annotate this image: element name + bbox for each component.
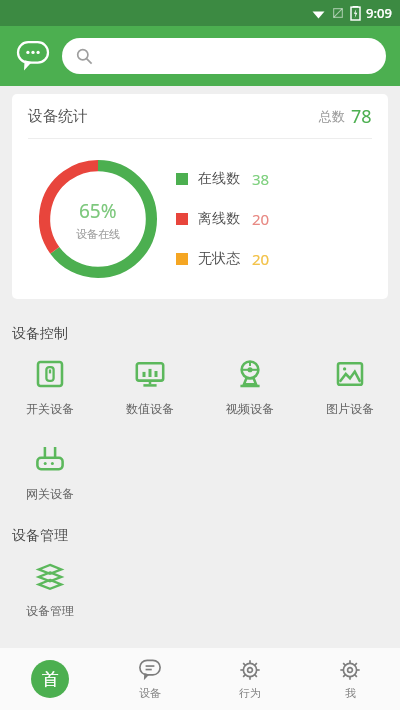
staticText: 开关设备 bbox=[26, 401, 74, 416]
staticText: 图片设备 bbox=[326, 401, 374, 416]
staticText: 20 bbox=[252, 249, 270, 269]
staticText: 行为 bbox=[239, 686, 261, 700]
staticText: 网关设备 bbox=[26, 486, 74, 501]
staticText: 9:09 bbox=[366, 4, 392, 22]
staticText: 设备控制 bbox=[12, 325, 68, 343]
staticText: 数值设备 bbox=[126, 401, 174, 416]
button[interactable]: 设备统计 bbox=[12, 94, 388, 299]
staticText: 65% bbox=[79, 198, 117, 224]
button[interactable]: 我 bbox=[300, 648, 400, 710]
staticText: 总数 bbox=[319, 108, 345, 124]
button[interactable]: 视频设备 bbox=[200, 353, 300, 420]
button[interactable]: 行为 bbox=[200, 648, 300, 710]
staticText: 离线数 bbox=[198, 210, 240, 228]
button[interactable] bbox=[62, 38, 386, 74]
staticText: 设备管理 bbox=[26, 603, 74, 618]
button[interactable]: 开关设备 bbox=[0, 353, 100, 420]
staticText: 设备在线 bbox=[76, 227, 120, 241]
staticText: 无状态 bbox=[198, 250, 240, 268]
staticText: 设备统计 bbox=[28, 107, 88, 126]
staticText: 视频设备 bbox=[226, 401, 274, 416]
staticText: 设备管理 bbox=[12, 527, 68, 545]
staticText: 我 bbox=[345, 686, 356, 700]
staticText: 20 bbox=[252, 209, 270, 229]
staticText: 38 bbox=[252, 169, 270, 189]
staticText: 设备 bbox=[139, 686, 161, 700]
button[interactable]: 图片设备 bbox=[300, 353, 400, 420]
button[interactable]: 数值设备 bbox=[100, 353, 200, 420]
button[interactable]: 网关设备 bbox=[0, 438, 100, 505]
staticText: 在线数 bbox=[198, 170, 240, 188]
button[interactable]: 首 bbox=[0, 648, 100, 710]
button[interactable]: 设备 bbox=[100, 648, 200, 710]
button[interactable]: 设备管理 bbox=[0, 555, 100, 622]
staticText: 78 bbox=[351, 104, 372, 129]
button[interactable]: Messages bbox=[14, 37, 52, 75]
staticText: 首 bbox=[42, 669, 59, 690]
